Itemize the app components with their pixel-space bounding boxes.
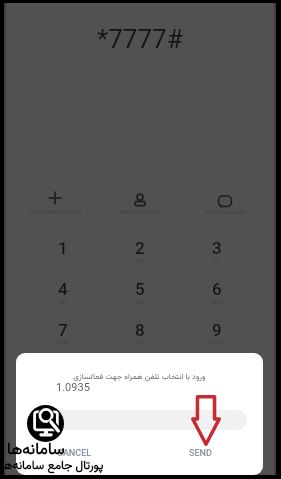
button[interactable]: Send message bbox=[189, 189, 261, 215]
button[interactable]: 4 bbox=[25, 279, 101, 320]
staticText: PQRS bbox=[57, 340, 70, 346]
staticText: CANCEL bbox=[57, 448, 92, 459]
staticText: DEF bbox=[212, 258, 221, 264]
staticText: 6 bbox=[212, 279, 222, 299]
staticText: 5 bbox=[135, 279, 145, 299]
staticText: *7777# bbox=[97, 24, 183, 54]
staticText: 3 bbox=[212, 238, 222, 258]
button[interactable]: 8 bbox=[101, 320, 178, 361]
button[interactable]: Create new contact bbox=[19, 189, 91, 215]
staticText: Add to existing bbox=[119, 208, 161, 215]
staticText: 7 bbox=[58, 320, 68, 340]
button[interactable]: 3 bbox=[178, 238, 255, 279]
staticText: GHI bbox=[59, 299, 68, 305]
staticText: WXYZ bbox=[210, 340, 224, 346]
button[interactable]: 1 bbox=[25, 238, 101, 279]
staticText: Send message bbox=[205, 208, 246, 215]
button[interactable]: Add to existing bbox=[104, 189, 176, 215]
staticText: SEND bbox=[189, 448, 212, 459]
button[interactable]: CANCEL bbox=[49, 443, 100, 464]
button[interactable]: SEND bbox=[181, 443, 220, 464]
staticText: پورتال جامع سامانه‌ها bbox=[1, 457, 104, 476]
staticText: سامانه‌ها bbox=[7, 438, 65, 463]
staticText: 1 bbox=[58, 238, 68, 258]
staticText: 2 bbox=[135, 238, 145, 258]
staticText: 8 bbox=[135, 320, 145, 340]
button[interactable]: 5 bbox=[101, 279, 178, 320]
staticText: 9 bbox=[212, 320, 222, 340]
button[interactable]: 7 bbox=[25, 320, 101, 361]
staticText: Create new contact bbox=[28, 208, 82, 215]
staticText: 4 bbox=[58, 279, 68, 299]
button[interactable]: 9 bbox=[178, 320, 255, 361]
staticText: TUV bbox=[135, 340, 145, 346]
staticText: ABC bbox=[135, 258, 145, 264]
staticText: MNO bbox=[211, 299, 223, 305]
button[interactable]: 2 bbox=[101, 238, 178, 279]
staticText: ورود با انتخاب تلفن همراه جهت فعالسازی bbox=[73, 371, 206, 384]
staticText: JKL bbox=[135, 299, 144, 305]
staticText: 1.0935 bbox=[56, 381, 90, 394]
button[interactable]: 6 bbox=[178, 279, 255, 320]
